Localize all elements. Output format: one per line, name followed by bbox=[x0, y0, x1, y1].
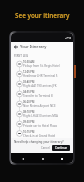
staticText: Continue bbox=[55, 146, 67, 150]
staticText: Check-in at Grand Hotel bbox=[23, 134, 56, 138]
button[interactable]: 04:55 PM bbox=[11, 89, 73, 99]
button[interactable]: Back bbox=[11, 42, 73, 51]
staticText: FIRST LEG bbox=[14, 54, 29, 58]
staticText: Need help changing your itinerary? bbox=[14, 140, 64, 144]
staticText: Cancel bbox=[41, 146, 50, 150]
staticText: See your itinerary bbox=[15, 11, 70, 20]
button[interactable]: Back bbox=[13, 44, 19, 50]
staticText: Pickup from St. Regis Hotel bbox=[23, 64, 60, 68]
button[interactable]: 03:40 PM bbox=[11, 79, 73, 89]
staticText: Nice Riviera Airport NCE bbox=[23, 104, 56, 108]
staticText: Flight AA1190 arrives JFK bbox=[23, 84, 57, 88]
button[interactable]: Recents bbox=[58, 155, 65, 162]
staticText: 12:05 PM bbox=[23, 70, 35, 74]
button[interactable]: Home bbox=[39, 155, 46, 162]
staticText: Flight LH4410 arrives MIA bbox=[23, 114, 58, 118]
staticText: 10:30 AM bbox=[23, 60, 35, 64]
staticText: 09:30 PM bbox=[23, 120, 35, 124]
staticText: Heathrow LHR Terminal 5 bbox=[23, 74, 58, 78]
staticText: 10:15 PM bbox=[23, 130, 35, 134]
button[interactable]: 10:15 PM bbox=[11, 129, 73, 138]
staticText: 04:55 PM bbox=[23, 90, 35, 94]
staticText: 06:20 PM bbox=[23, 100, 35, 104]
button[interactable]: Cancel bbox=[40, 145, 51, 151]
button[interactable]: Continue bbox=[52, 145, 70, 151]
button[interactable]: 12:05 PM bbox=[11, 69, 73, 79]
staticText: Private car to Hotel Plaza bbox=[23, 124, 57, 128]
button[interactable]: 08:10 PM bbox=[11, 109, 73, 119]
staticText: 03:40 PM bbox=[23, 80, 35, 84]
button[interactable]: 10:30 AM bbox=[11, 59, 73, 69]
staticText: Your Itinerary bbox=[20, 44, 47, 49]
button[interactable]: Back bbox=[19, 155, 26, 162]
staticText: Transfer to Terminal 8 bbox=[23, 94, 53, 98]
staticText: 08:10 PM bbox=[23, 110, 35, 114]
button[interactable]: 09:30 PM bbox=[11, 119, 73, 129]
button[interactable]: 06:20 PM bbox=[11, 99, 73, 109]
